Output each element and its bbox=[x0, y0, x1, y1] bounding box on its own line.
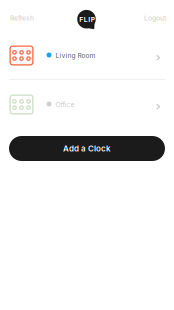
button[interactable]: Office bbox=[0, 80, 174, 128]
button[interactable]: Refresh bbox=[10, 7, 50, 29]
staticText: Living Room bbox=[55, 51, 95, 60]
staticText: Add a Clock bbox=[63, 144, 111, 153]
staticText: Refresh bbox=[10, 14, 34, 22]
staticText: Office bbox=[55, 100, 74, 109]
staticText: FLIP bbox=[79, 15, 95, 24]
button[interactable]: Logout bbox=[130, 7, 166, 29]
button[interactable]: Add a Clock bbox=[9, 136, 165, 161]
staticText: Logout bbox=[144, 14, 166, 22]
button[interactable]: Living Room bbox=[0, 31, 174, 79]
